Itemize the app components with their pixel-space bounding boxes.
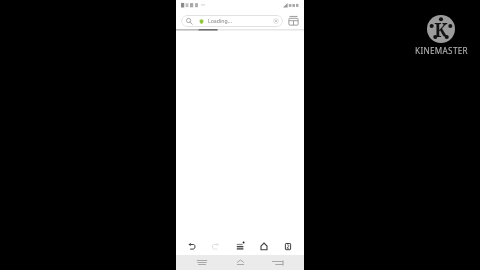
button[interactable]: Home <box>233 255 249 270</box>
button[interactable]: Tabs <box>278 236 298 255</box>
button[interactable]: Recent apps <box>194 255 210 270</box>
staticText: K <box>434 17 448 43</box>
button[interactable]: Back <box>271 255 287 270</box>
button[interactable]: Menu <box>230 236 250 255</box>
button[interactable]: Tabs overview <box>286 13 300 27</box>
button[interactable]: Back <box>182 236 202 255</box>
button[interactable]: Loading... <box>181 15 283 27</box>
button[interactable]: Home <box>254 236 274 255</box>
button[interactable]: Forward <box>206 236 226 255</box>
staticText: KINEMASTER <box>415 45 468 56</box>
staticText: Loading... <box>208 17 232 24</box>
other: Stop loading <box>273 18 279 24</box>
